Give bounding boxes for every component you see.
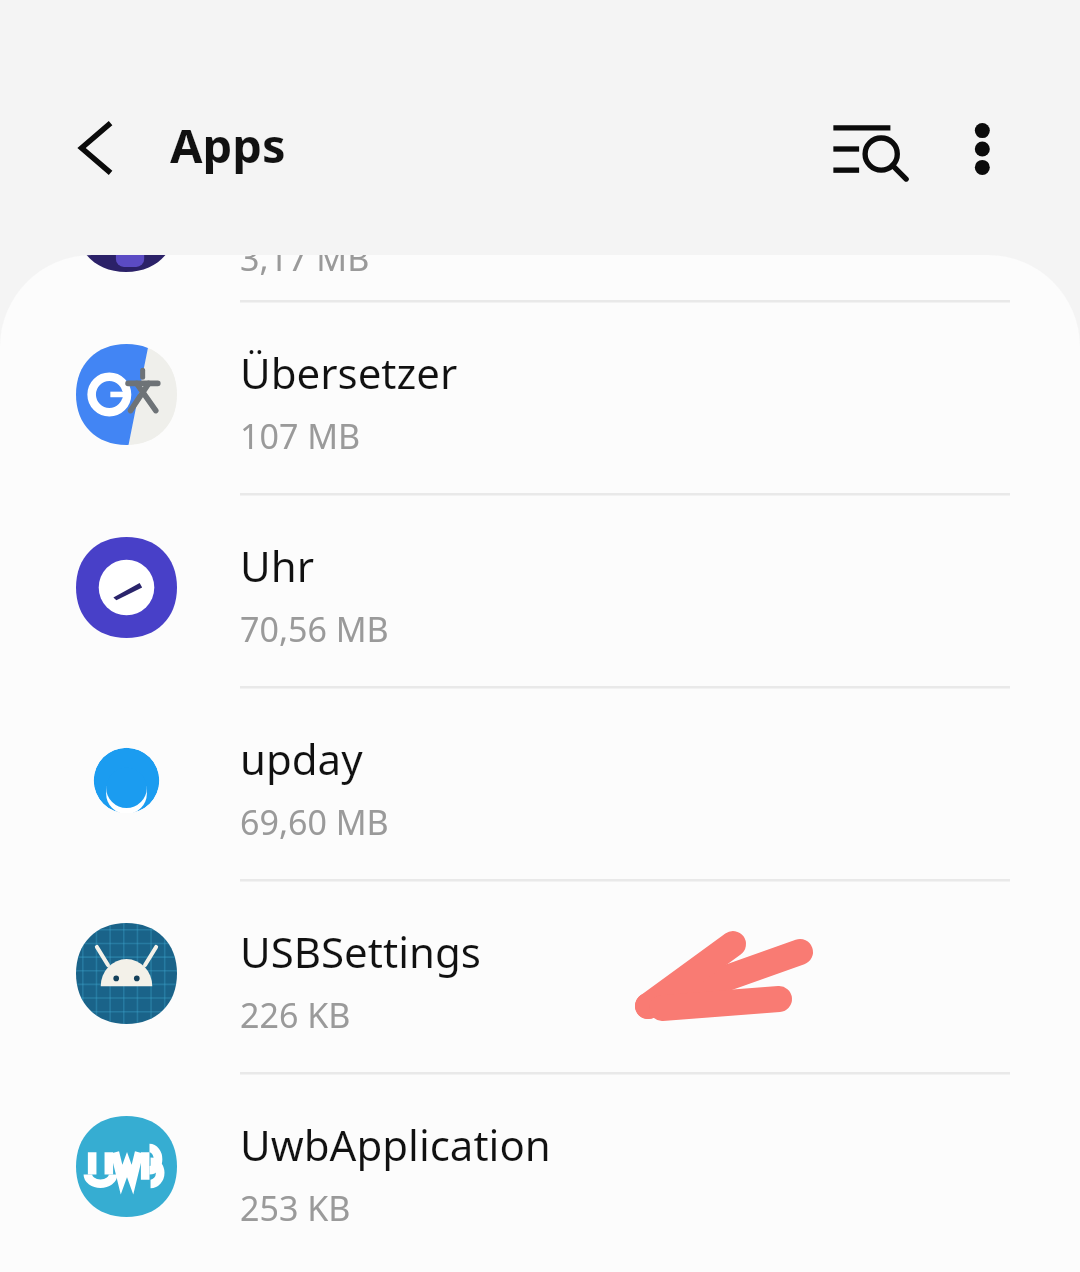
button[interactable]: More options bbox=[940, 103, 1032, 195]
button[interactable]: Search bbox=[826, 103, 918, 195]
staticText: 226 KB bbox=[240, 992, 351, 1038]
staticText: Apps bbox=[170, 113, 286, 177]
button[interactable]: Back bbox=[48, 100, 144, 196]
button[interactable]: USBSettings bbox=[0, 879, 1080, 1072]
button[interactable]: upday bbox=[0, 686, 1080, 879]
staticText: Uhr bbox=[240, 537, 315, 594]
staticText: USBSettings bbox=[240, 923, 481, 980]
staticText: 3,17 MB bbox=[240, 255, 370, 280]
button[interactable]: UwbApplication bbox=[0, 1072, 1080, 1265]
button[interactable]: Übersetzer bbox=[0, 300, 1080, 493]
staticText: 107 MB bbox=[240, 413, 361, 459]
staticText: upday bbox=[240, 730, 363, 787]
button[interactable]: Uhr bbox=[0, 493, 1080, 686]
staticText: 253 KB bbox=[240, 1185, 351, 1231]
staticText: UwbApplication bbox=[240, 1116, 551, 1173]
staticText: 69,60 MB bbox=[240, 799, 389, 845]
staticText: 70,56 MB bbox=[240, 606, 389, 652]
staticText: Übersetzer bbox=[240, 344, 458, 401]
